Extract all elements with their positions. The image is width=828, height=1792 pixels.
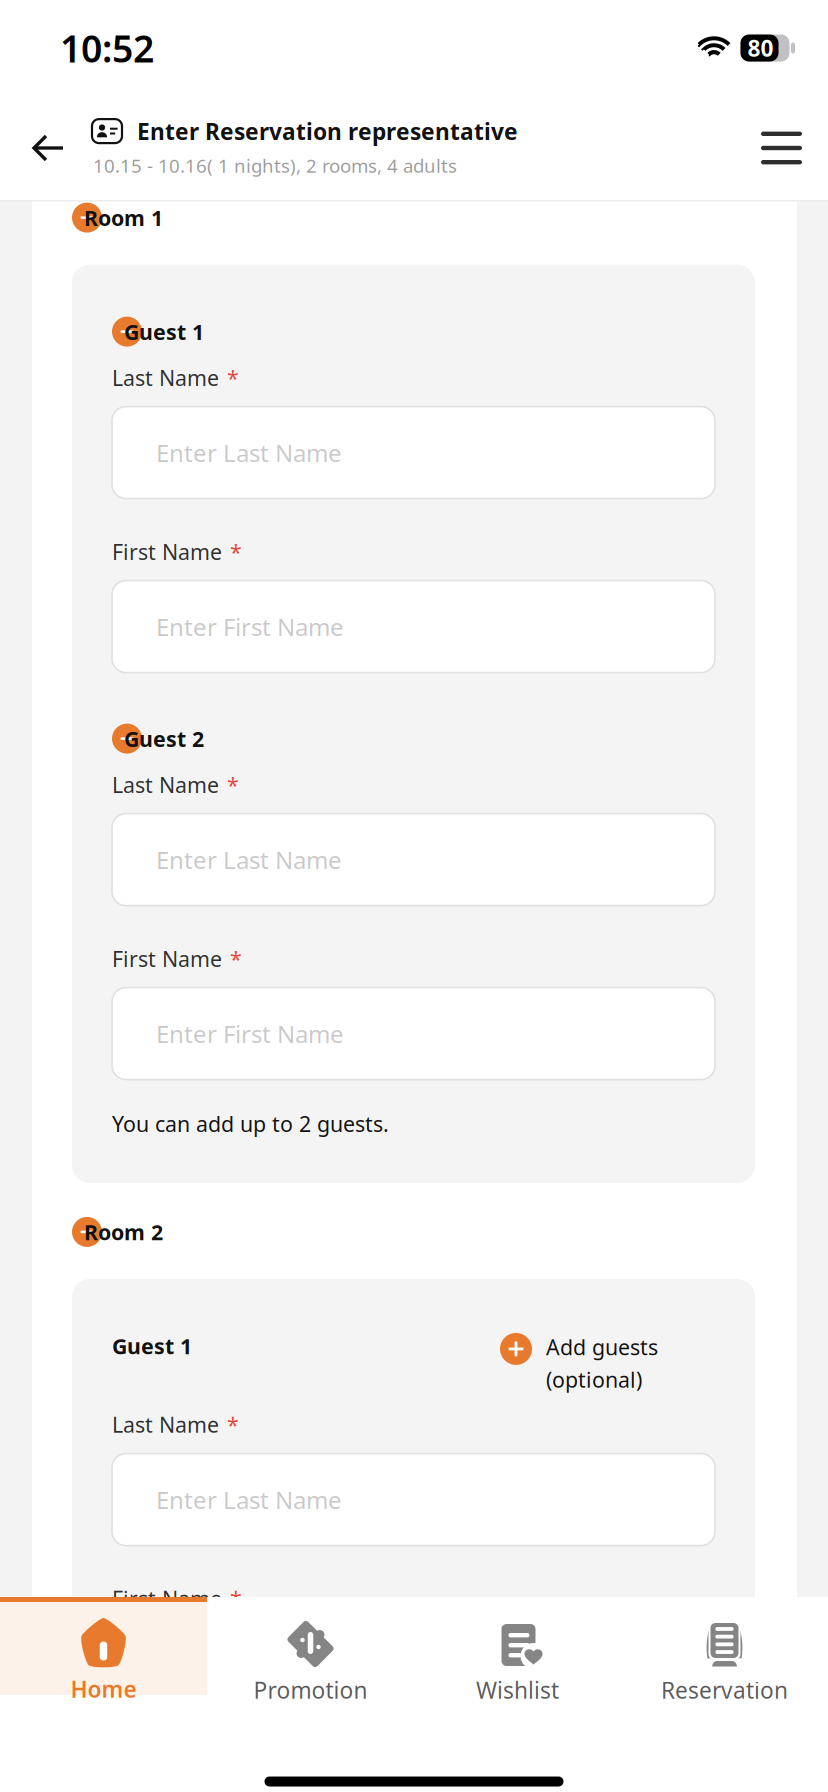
button[interactable]: Back <box>32 112 92 184</box>
staticText: Home <box>70 1674 136 1704</box>
staticText: Promotion <box>253 1675 367 1705</box>
staticText: You can add up to 2 guests. <box>112 1110 389 1138</box>
staticText: * <box>230 1584 242 1613</box>
staticText: Guest 1 <box>124 317 204 346</box>
button[interactable]: Menu <box>742 112 802 184</box>
button[interactable]: Promotion <box>207 1597 414 1757</box>
staticText: First Name <box>112 1584 222 1613</box>
staticText: Last Name <box>112 1410 219 1439</box>
staticText: Guest 1 <box>112 1332 192 1360</box>
staticText: (optional) <box>546 1365 642 1394</box>
staticText: Enter Reservation representative <box>137 116 518 146</box>
staticText: Enter First Name <box>156 611 344 643</box>
button[interactable]: Wishlist <box>414 1597 621 1757</box>
button[interactable]: Home <box>0 1597 207 1757</box>
staticText: Enter Last Name <box>156 1484 342 1516</box>
button[interactable]: Guest 2 <box>112 724 715 754</box>
staticText: 10.15 - 10.16( 1 nights), 2 rooms, 4 adu… <box>93 153 457 178</box>
staticText: Reservation <box>661 1675 788 1705</box>
button[interactable]: Room 1 <box>72 203 755 233</box>
button[interactable]: Guest 1 <box>112 317 715 347</box>
staticText: Enter First Name <box>156 1018 344 1050</box>
staticText: First Name <box>112 537 222 566</box>
staticText: * <box>227 770 239 799</box>
staticText: First Name <box>112 944 222 973</box>
button[interactable]: Add guests <box>500 1331 715 1394</box>
staticText: Room 2 <box>84 1218 163 1246</box>
staticText: * <box>230 537 242 566</box>
staticText: Room 1 <box>84 203 163 232</box>
staticText: Last Name <box>112 363 219 392</box>
staticText: Guest 2 <box>124 724 204 753</box>
staticText: 10:52 <box>60 23 154 73</box>
staticText: Enter Last Name <box>156 437 342 469</box>
button[interactable]: Room 2 <box>72 1217 755 1247</box>
staticText: * <box>230 944 242 973</box>
staticText: * <box>227 363 239 392</box>
staticText: Wishlist <box>476 1675 559 1705</box>
staticText: * <box>227 1410 239 1439</box>
staticText: Add guests <box>546 1333 658 1361</box>
staticText: Last Name <box>112 770 219 799</box>
button[interactable]: Reservation <box>621 1597 828 1757</box>
staticText: 80 <box>747 33 773 63</box>
staticText: Enter Last Name <box>156 844 342 876</box>
